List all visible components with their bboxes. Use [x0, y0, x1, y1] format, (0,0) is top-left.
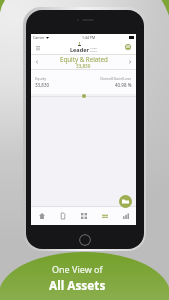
- button[interactable]: Reports: [115, 207, 136, 225]
- staticText: Overall Gain/Loss: [100, 76, 132, 81]
- button[interactable]: Documents: [52, 207, 73, 225]
- staticText: Leader: [70, 46, 89, 53]
- staticText: 1:44 PM: [82, 35, 96, 40]
- staticText: One View of: [52, 263, 103, 275]
- staticText: Equity: [35, 76, 47, 81]
- button[interactable]: Menu: [34, 44, 41, 51]
- staticText: 40.98 %: [115, 82, 132, 88]
- button[interactable]: Profile: [125, 44, 131, 50]
- staticText: 33,830: [35, 82, 50, 88]
- staticText: SMART: [90, 50, 98, 53]
- button[interactable]: Transfers: [94, 207, 115, 225]
- staticText: AB: [126, 45, 130, 49]
- button[interactable]: Dashboard: [73, 207, 94, 225]
- staticText: INVEST: [90, 47, 98, 50]
- button[interactable]: Home: [31, 207, 52, 225]
- staticText: Carrier: [33, 35, 45, 40]
- button[interactable]: New document: [119, 195, 132, 208]
- staticText: All Assets: [49, 277, 106, 293]
- staticText: Equity & Related: [60, 55, 108, 63]
- button[interactable]: Next: [124, 55, 136, 69]
- staticText: 33,830: [76, 63, 91, 69]
- button[interactable]: Previous: [31, 55, 43, 69]
